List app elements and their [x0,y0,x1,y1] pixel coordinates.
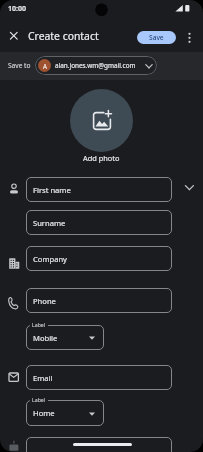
button[interactable]: First name [26,177,172,202]
staticText: alan.jones.wm@gmail.com [55,61,136,70]
staticText: Home [33,408,55,418]
staticText: Label [32,321,46,328]
button[interactable]: Surname [26,210,172,235]
staticText: First name [33,185,71,195]
staticText: Add photo [83,153,120,163]
button[interactable]: A [35,56,157,75]
button[interactable]: Save [137,31,176,44]
staticText: Mobile [33,333,58,343]
button[interactable] [183,30,197,46]
staticText: Email [33,373,53,383]
staticText: Company [33,254,67,264]
button[interactable] [70,89,133,152]
button[interactable]: Home [26,400,104,426]
staticText: Label [32,396,46,403]
staticText: Save [149,33,164,42]
staticText: A [43,62,47,70]
staticText: Save to [8,61,31,70]
button[interactable] [5,27,23,45]
staticText: Create contact [28,29,99,43]
button[interactable]: Email [26,365,172,390]
button[interactable]: Mobile [26,325,104,350]
staticText: Surname [33,218,66,228]
staticText: Phone [33,296,56,306]
button[interactable] [26,437,172,452]
button[interactable]: Company [26,246,172,271]
staticText: 10:00 [8,4,26,14]
button[interactable]: Phone [26,288,172,313]
